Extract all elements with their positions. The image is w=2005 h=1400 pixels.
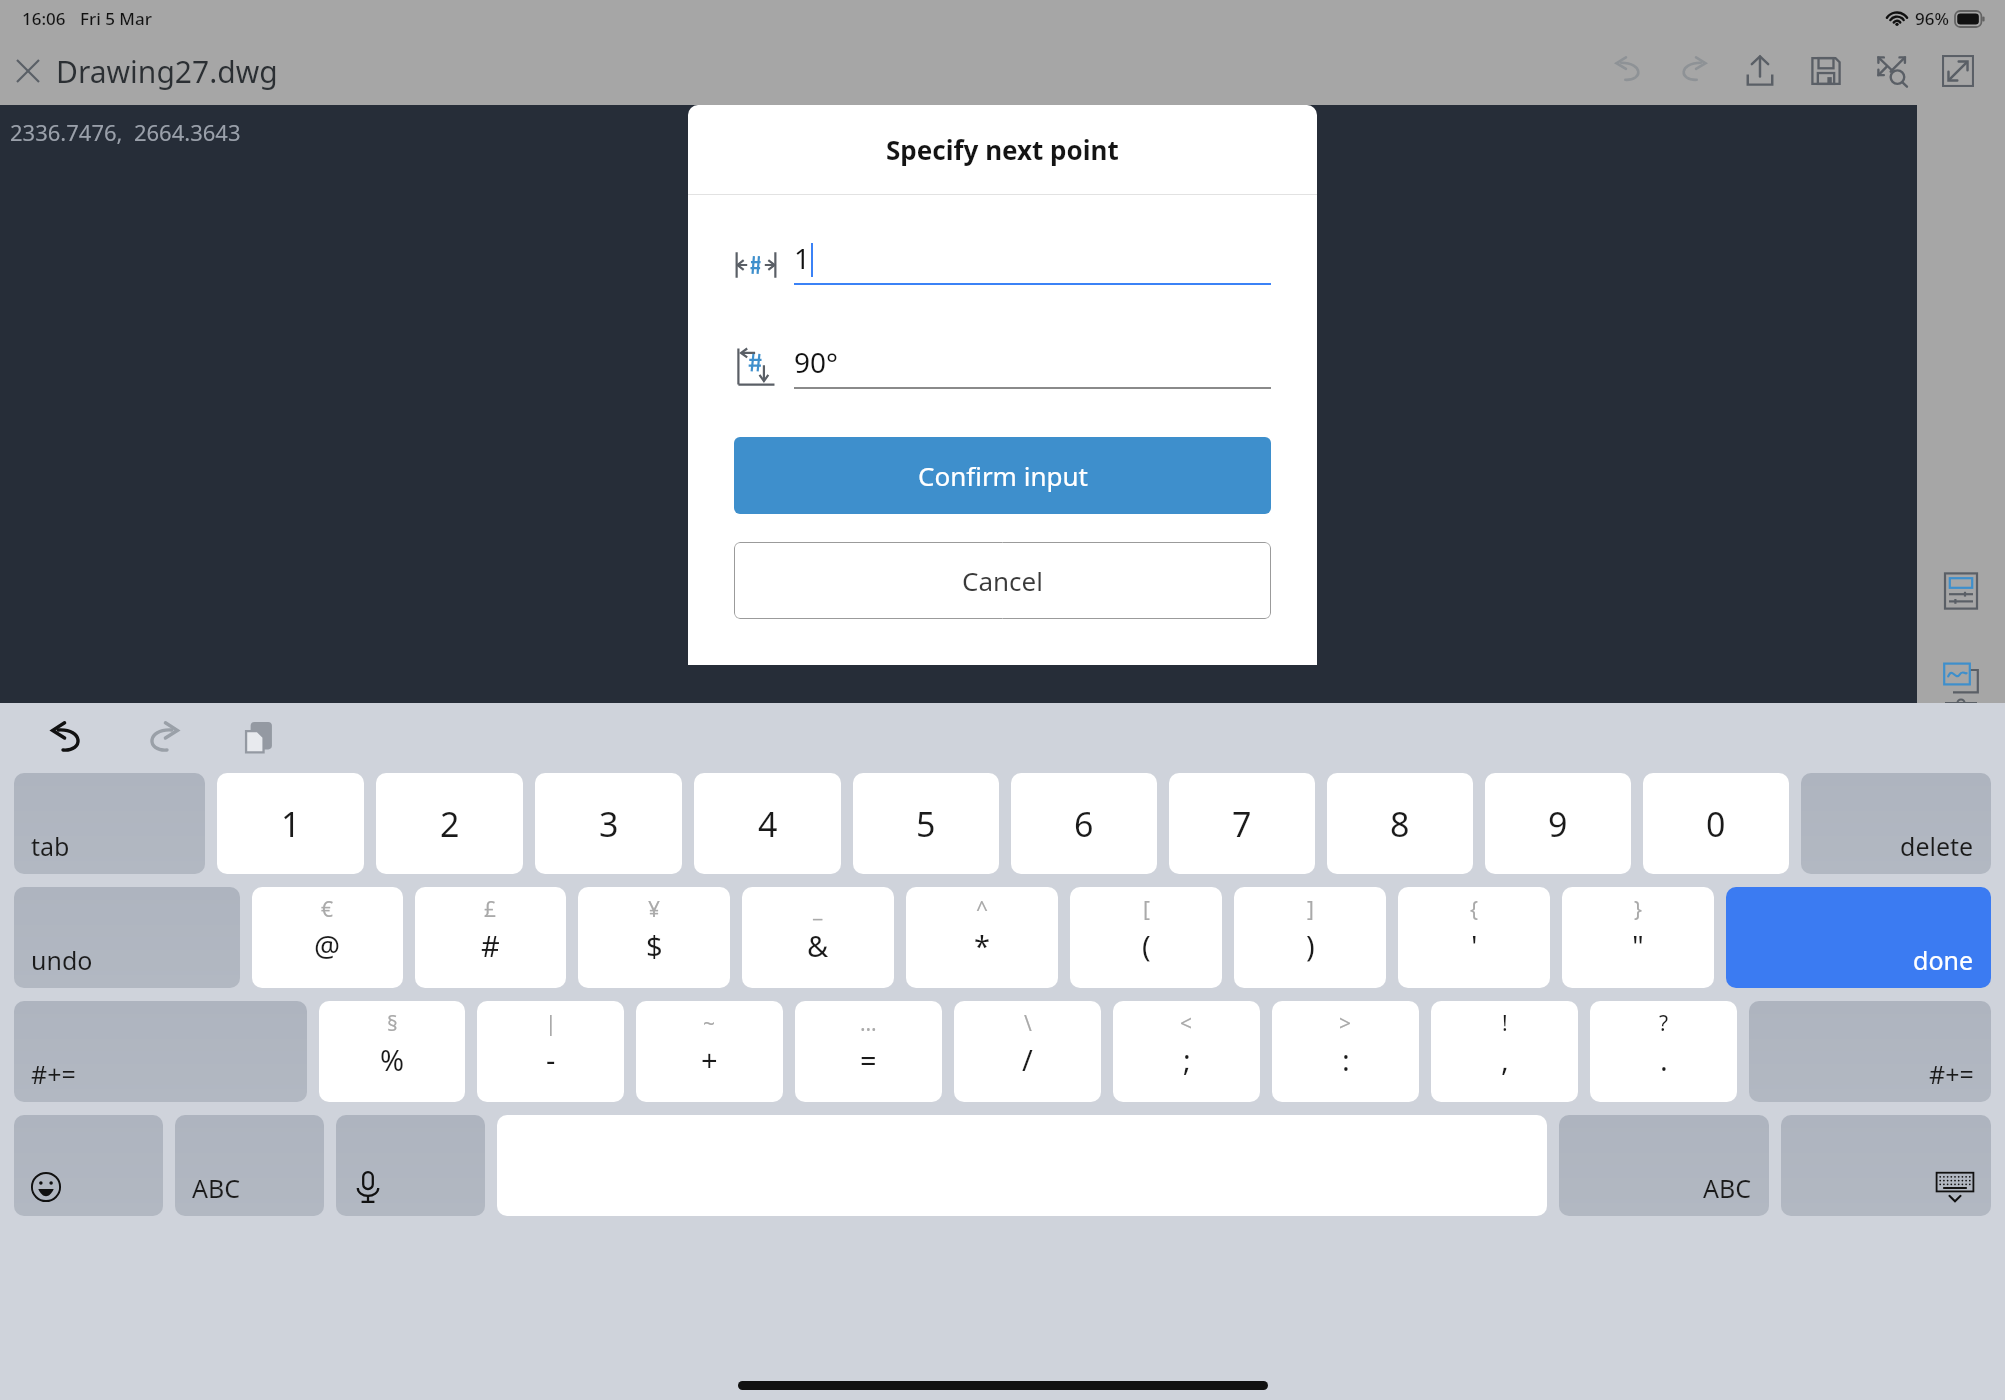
button[interactable]: } xyxy=(1562,887,1714,988)
staticText: ~ xyxy=(703,1009,716,1038)
staticText: 9 xyxy=(1548,801,1568,847)
button[interactable]: ~ xyxy=(636,1001,783,1102)
button[interactable]: 1 xyxy=(217,773,364,874)
staticText: [ xyxy=(1143,895,1150,924)
button[interactable]: | xyxy=(477,1001,624,1102)
staticText: ABC xyxy=(192,1171,241,1205)
button[interactable]: Properties xyxy=(1933,563,1989,619)
staticText: € xyxy=(321,895,334,924)
staticText: ( xyxy=(1142,926,1151,965)
staticText: 90° xyxy=(794,343,839,381)
button[interactable]: #+= xyxy=(1749,1001,1991,1102)
button[interactable]: #+= xyxy=(14,1001,307,1102)
button[interactable]: ] xyxy=(1234,887,1386,988)
button[interactable]: Dictation xyxy=(336,1115,485,1216)
button[interactable]: Paste xyxy=(228,707,290,769)
button[interactable]: ABC xyxy=(1559,1115,1769,1216)
button[interactable]: ^ xyxy=(906,887,1058,988)
staticText: ) xyxy=(1306,926,1315,965)
staticText: Drawing27.dwg xyxy=(56,51,278,92)
staticText: % xyxy=(380,1040,405,1079)
staticText: ^ xyxy=(976,895,989,924)
staticText: $ xyxy=(646,926,663,965)
staticText: Specify next point xyxy=(886,132,1119,167)
staticText: 3 xyxy=(599,801,619,847)
button[interactable]: € xyxy=(252,887,403,988)
button[interactable]: _ xyxy=(742,887,894,988)
button[interactable]: Undo xyxy=(1595,41,1661,101)
button[interactable]: \ xyxy=(954,1001,1101,1102)
button[interactable]: < xyxy=(1113,1001,1260,1102)
button[interactable]: 7 xyxy=(1169,773,1315,874)
staticText: 5 xyxy=(916,801,936,847)
button[interactable]: § xyxy=(319,1001,465,1102)
button[interactable]: delete xyxy=(1801,773,1991,874)
staticText: } xyxy=(1634,895,1642,924)
button[interactable]: ! xyxy=(1431,1001,1578,1102)
button[interactable]: 8 xyxy=(1327,773,1473,874)
staticText: £ xyxy=(484,895,497,924)
staticText: 96% xyxy=(1915,7,1949,30)
button[interactable]: 0 xyxy=(1643,773,1789,874)
staticText: ABC xyxy=(1703,1171,1752,1205)
button[interactable]: 9 xyxy=(1485,773,1631,874)
staticText: & xyxy=(807,926,829,965)
button[interactable]: 3 xyxy=(535,773,682,874)
button[interactable]: 6 xyxy=(1011,773,1157,874)
staticText: Cancel xyxy=(962,563,1043,598)
button[interactable]: ¥ xyxy=(578,887,730,988)
button[interactable]: undo xyxy=(14,887,240,988)
staticText: 16:06 xyxy=(22,7,66,30)
staticText: : xyxy=(1342,1040,1350,1079)
staticText: ' xyxy=(1471,926,1478,965)
button[interactable]: [ xyxy=(1070,887,1222,988)
staticText: ; xyxy=(1183,1040,1191,1079)
button[interactable]: Full screen xyxy=(1925,41,1991,101)
button[interactable]: Undo xyxy=(36,707,98,769)
button[interactable]: Save xyxy=(1793,41,1859,101)
button[interactable]: done xyxy=(1726,887,1991,988)
button[interactable]: 4 xyxy=(694,773,841,874)
staticText: " xyxy=(1632,926,1644,965)
button[interactable]: Confirm input xyxy=(734,437,1271,514)
staticText: = xyxy=(860,1040,877,1079)
staticText: 2 xyxy=(440,801,460,847)
staticText: done xyxy=(1913,943,1974,977)
button[interactable]: Cancel xyxy=(734,542,1271,619)
button[interactable]: Layers xyxy=(1933,653,1989,703)
staticText: ¥ xyxy=(648,895,661,924)
staticText: _ xyxy=(813,895,823,924)
staticText: . xyxy=(1660,1040,1668,1079)
button[interactable]: > xyxy=(1272,1001,1419,1102)
staticText: Confirm input xyxy=(918,458,1088,493)
staticText: * xyxy=(974,926,990,965)
button[interactable]: … xyxy=(795,1001,942,1102)
button[interactable]: 2 xyxy=(376,773,523,874)
staticText: / xyxy=(1022,1040,1033,1079)
staticText: ! xyxy=(1502,1009,1508,1038)
button[interactable]: Redo xyxy=(132,707,194,769)
button[interactable]: ? xyxy=(1590,1001,1737,1102)
button[interactable]: ABC xyxy=(175,1115,324,1216)
button[interactable]: Emoji xyxy=(14,1115,163,1216)
staticText: + xyxy=(701,1040,718,1079)
staticText: 8 xyxy=(1390,801,1410,847)
staticText: > xyxy=(1339,1009,1352,1038)
button[interactable]: £ xyxy=(415,887,566,988)
button[interactable]: Share xyxy=(1727,41,1793,101)
staticText: 2336.7476, 2664.3643 xyxy=(10,117,241,147)
staticText: undo xyxy=(31,943,93,977)
staticText: 6 xyxy=(1074,801,1094,847)
button[interactable]: Close xyxy=(0,43,56,99)
button[interactable]: Hide keyboard xyxy=(1781,1115,1991,1216)
staticText: Fri 5 Mar xyxy=(80,7,152,30)
button[interactable]: tab xyxy=(14,773,205,874)
button[interactable]: Zoom extents xyxy=(1859,41,1925,101)
button[interactable]: 5 xyxy=(853,773,999,874)
button[interactable]: { xyxy=(1398,887,1550,988)
staticText: #+= xyxy=(31,1057,76,1091)
staticText: 0 xyxy=(1706,801,1726,847)
button[interactable]: Redo xyxy=(1661,41,1727,101)
staticText: § xyxy=(387,1009,398,1038)
